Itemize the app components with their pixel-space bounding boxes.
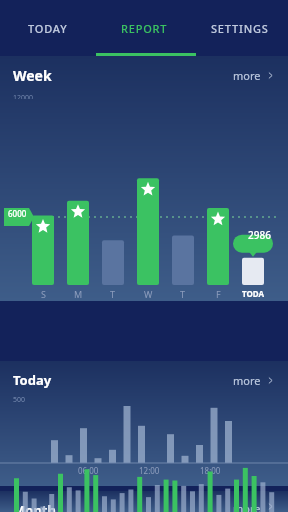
button[interactable]: SETTINGS xyxy=(192,0,288,56)
staticText: T xyxy=(180,288,186,300)
staticText: F xyxy=(216,288,221,300)
button[interactable]: Today xyxy=(0,371,288,389)
staticText: more xyxy=(233,68,261,83)
staticText: 06:00 xyxy=(78,465,99,476)
button[interactable]: Month xyxy=(0,501,288,512)
staticText: W xyxy=(144,288,153,300)
staticText: TODAY xyxy=(28,21,68,36)
staticText: 12000 xyxy=(13,93,34,99)
staticText: more xyxy=(233,373,261,388)
staticText: Week xyxy=(13,66,52,85)
staticText: REPORT xyxy=(121,21,168,36)
staticText: T xyxy=(110,288,116,300)
button[interactable]: TODAY xyxy=(0,0,96,56)
button[interactable]: Week xyxy=(0,66,288,85)
staticText: M xyxy=(74,288,83,300)
staticText: Today xyxy=(13,371,52,389)
button[interactable]: REPORT xyxy=(96,0,192,56)
staticText: 6000 xyxy=(8,208,27,219)
staticText: 2986 xyxy=(248,228,271,242)
staticText: 12:00 xyxy=(139,465,160,476)
staticText: TODAY xyxy=(242,288,264,310)
staticText: 18:00 xyxy=(200,465,221,476)
staticText: S xyxy=(41,288,46,300)
staticText: 500 xyxy=(13,395,26,405)
staticText: more xyxy=(233,501,261,512)
staticText: SETTINGS xyxy=(211,21,269,36)
staticText: Month xyxy=(13,501,56,512)
